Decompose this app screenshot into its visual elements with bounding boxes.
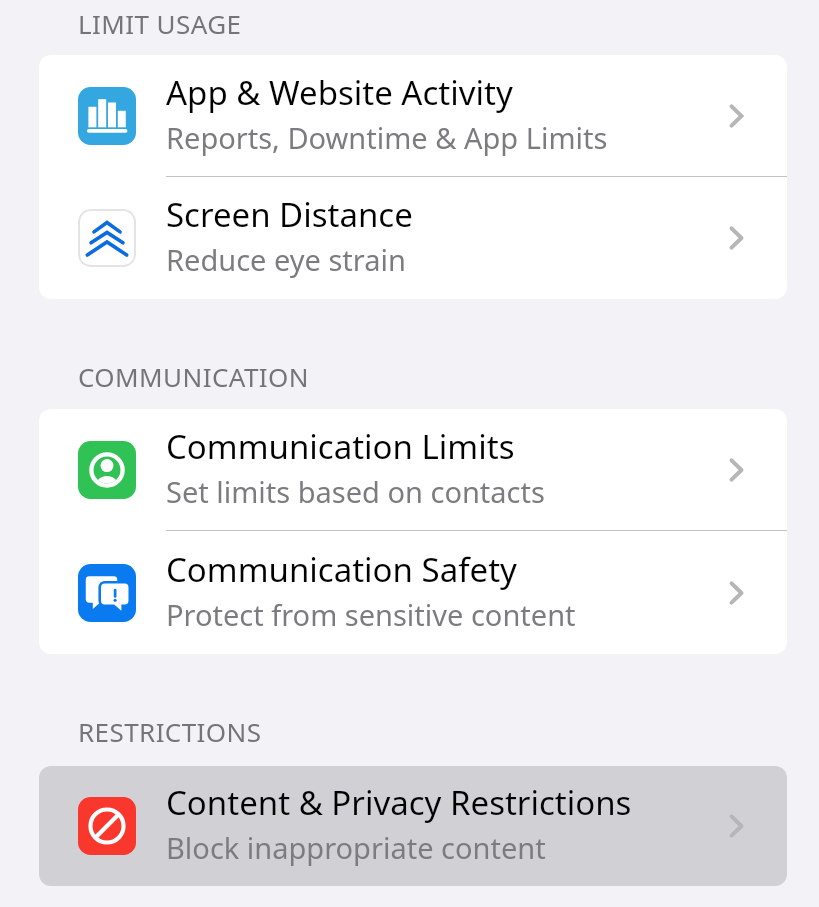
button[interactable]: App & Website Activity xyxy=(39,55,787,177)
staticText: Set limits based on contacts xyxy=(166,472,545,511)
button[interactable]: Communication Safety xyxy=(39,531,787,654)
other: Open App & Website Activity xyxy=(729,104,787,128)
staticText: Reports, Downtime & App Limits xyxy=(166,118,608,157)
button[interactable]: Communication Limits xyxy=(39,409,787,531)
staticText: LIMIT USAGE xyxy=(78,6,242,41)
other: Open Communication Safety xyxy=(729,581,787,605)
other: Open Content & Privacy Restrictions xyxy=(729,814,787,838)
button[interactable]: Content & Privacy Restrictions xyxy=(39,766,787,886)
other: Open Screen Distance xyxy=(729,226,787,250)
staticText: Reduce eye strain xyxy=(166,240,406,279)
staticText: Protect from sensitive content xyxy=(166,595,576,634)
staticText: Communication Limits xyxy=(166,424,515,469)
staticText: Screen Distance xyxy=(166,192,413,237)
other: Open Communication Limits xyxy=(729,458,787,482)
staticText: RESTRICTIONS xyxy=(78,714,262,749)
staticText: Communication Safety xyxy=(166,547,517,592)
staticText: App & Website Activity xyxy=(166,70,513,115)
staticText: COMMUNICATION xyxy=(78,359,309,394)
staticText: Block inappropriate content xyxy=(166,828,546,867)
button[interactable]: Screen Distance xyxy=(39,177,787,299)
staticText: Content & Privacy Restrictions xyxy=(166,780,632,825)
